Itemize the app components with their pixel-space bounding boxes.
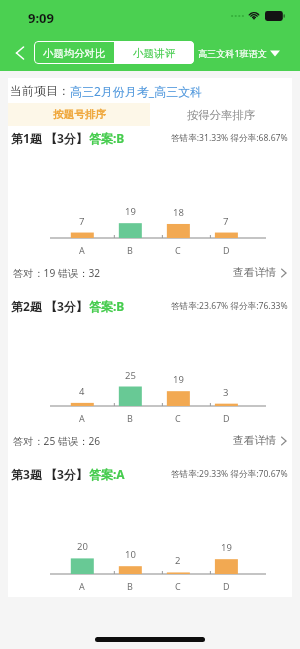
staticText: A [79,580,85,592]
staticText: D [223,580,230,592]
staticText: 查看详情 [233,266,277,280]
staticText: 25 [125,369,136,382]
staticText: 答案:B [89,130,125,146]
staticText: 7 [79,215,85,228]
staticText: 第3题 【3分】 [11,466,88,482]
staticText: 答案:A [89,466,125,482]
staticText: C [175,580,181,592]
staticText: 答对：19 错误：32 [13,266,101,280]
staticText: A [79,412,85,424]
staticText: 答案:B [89,298,125,314]
staticText: 19 [221,541,232,554]
button[interactable]: 查看详情 [233,266,286,280]
button[interactable]: 小题均分对比 [34,41,114,64]
staticText: 7 [223,215,229,228]
staticText: 第1题 【3分】 [11,130,88,146]
staticText: 18 [173,206,184,219]
button[interactable]: 小题讲评 [114,41,194,64]
staticText: 答错率:31.33% 得分率:68.67% [171,132,288,144]
staticText: 按得分率排序 [187,108,255,122]
staticText: 2 [175,554,181,567]
staticText: 第2题 【3分】 [11,298,88,314]
button[interactable]: 高三文科1班语文 [198,41,279,63]
staticText: B [127,412,133,424]
button[interactable]: Back [8,41,32,65]
button[interactable]: 按得分率排序 [150,103,292,126]
staticText: B [127,244,133,256]
staticText: C [175,412,181,424]
staticText: C [175,244,181,256]
staticText: B [127,580,133,592]
staticText: 3 [223,386,229,399]
button[interactable]: 按题号排序 [8,103,150,126]
staticText: 10 [125,548,136,561]
staticText: 19 [173,373,184,386]
staticText: 答对：25 错误：26 [13,434,101,448]
staticText: D [223,244,230,256]
staticText: 4 [79,385,85,398]
staticText: 9:09 [28,9,54,27]
staticText: 高三2月份月考_高三文科 [70,83,203,99]
staticText: 小题均分对比 [43,47,106,60]
staticText: 高三文科1班语文 [198,47,267,59]
staticText: 查看详情 [233,434,277,448]
staticText: 答错率:23.67% 得分率:76.33% [171,300,288,312]
staticText: 按题号排序 [53,108,106,121]
staticText: 小题讲评 [133,47,176,60]
staticText: 答错率:29.33% 得分率:70.67% [171,468,288,480]
button[interactable]: 查看详情 [233,434,286,448]
staticText: 19 [125,205,136,218]
staticText: 20 [77,540,88,553]
staticText: 当前项目： [10,83,70,98]
staticText: D [223,412,230,424]
staticText: A [79,244,85,256]
